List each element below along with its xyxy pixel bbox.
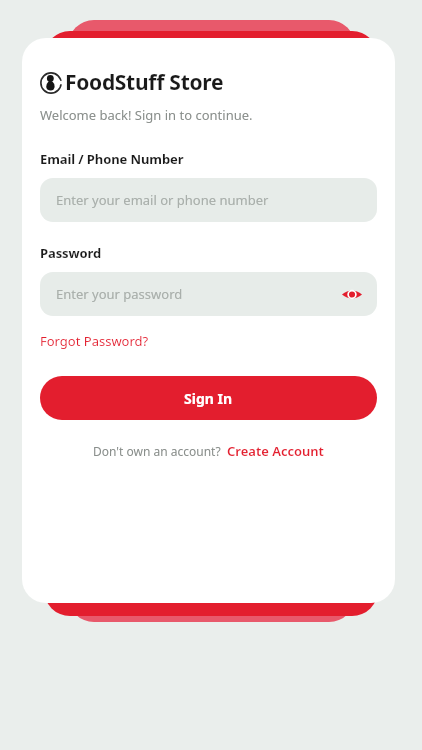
staticText: Welcome back! Sign in to continue. [40, 106, 253, 124]
staticText: Forgot Password? [40, 332, 149, 350]
staticText: Don't own an account? [93, 443, 221, 459]
button[interactable]: Create Account [227, 442, 324, 460]
staticText: Email / Phone Number [40, 150, 184, 168]
staticText: Password [40, 244, 102, 262]
button[interactable]: Enter your email or phone number [40, 178, 377, 222]
button[interactable]: Sign In [40, 376, 377, 420]
staticText: Enter your password [56, 285, 183, 303]
staticText: Sign In [184, 389, 233, 408]
button[interactable]: Forgot Password? [40, 332, 149, 350]
staticText: FoodStuff Store [65, 68, 224, 97]
staticText: Enter your email or phone number [56, 191, 269, 209]
staticText: Create Account [227, 442, 324, 460]
button[interactable]: Show password [339, 281, 365, 307]
button[interactable]: Enter your password [40, 272, 377, 316]
